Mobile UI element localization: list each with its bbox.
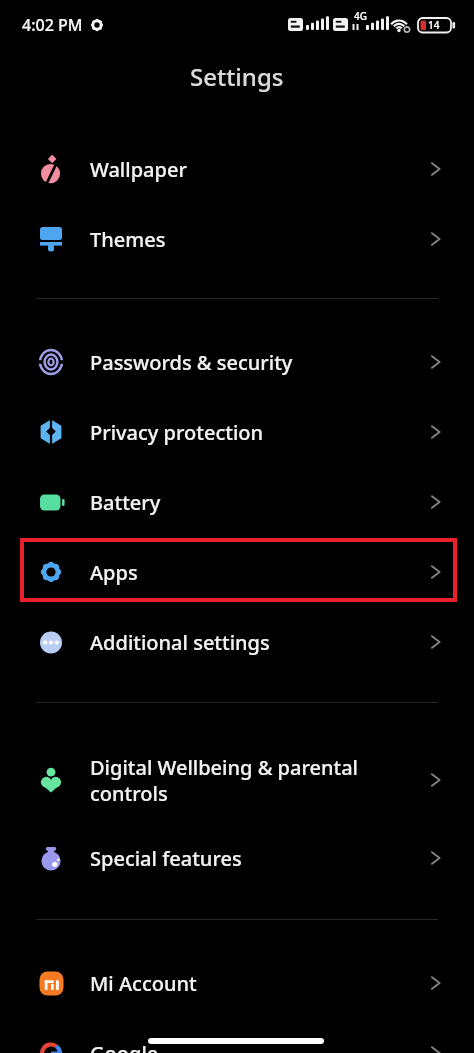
button[interactable]: Digital Wellbeing & parental controls [0,737,474,823]
button[interactable]: Special features [0,823,474,893]
staticText: Additional settings [90,629,430,656]
staticText: Mi Account [90,970,430,997]
button[interactable]: Privacy protection [0,397,474,467]
button[interactable]: Passwords & security [0,327,474,397]
staticText: Google [90,1040,430,1053]
staticText: 4G [354,9,367,23]
staticText: Privacy protection [90,419,430,446]
button[interactable]: Mi Account [0,948,474,1018]
button[interactable]: Apps [0,537,474,607]
staticText: Settings [190,60,284,93]
staticText: Apps [90,559,430,586]
button[interactable]: Themes [0,204,474,274]
staticText: 14 [428,18,440,32]
button[interactable]: Google [0,1018,474,1053]
staticText: Battery [90,489,430,516]
button[interactable]: Additional settings [0,607,474,677]
staticText: Digital Wellbeing & parental controls [90,754,430,806]
button[interactable]: Battery [0,467,474,537]
button[interactable]: Wallpaper [0,134,474,204]
staticText: Passwords & security [90,349,430,376]
staticText: 4:02 PM [22,14,83,36]
staticText: Special features [90,845,430,872]
staticText: Themes [90,226,430,253]
staticText: Wallpaper [90,156,430,183]
